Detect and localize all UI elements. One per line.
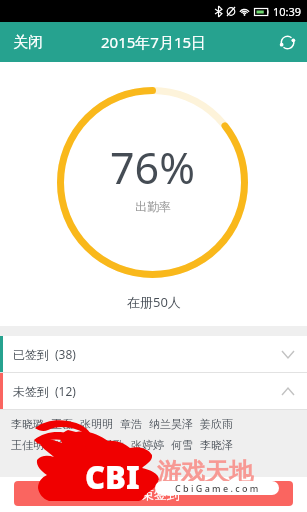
staticText: 张明明 bbox=[80, 417, 113, 431]
staticText: 王佳明 bbox=[11, 438, 44, 452]
button[interactable]: 未签到 bbox=[0, 373, 307, 409]
button[interactable]: 关闭 bbox=[0, 23, 56, 62]
staticText: 未签到 bbox=[13, 384, 49, 399]
staticText: 姜欣雨 bbox=[200, 417, 233, 431]
staticText: 出勤率 bbox=[135, 199, 171, 214]
staticText: 结束签到 bbox=[128, 486, 180, 502]
staticText: C b i G a m e . c o m bbox=[175, 482, 259, 494]
staticText: 李晓泽 bbox=[200, 438, 233, 452]
staticText: 76% bbox=[110, 138, 195, 197]
staticText: 纳兰昊泽 bbox=[149, 417, 193, 431]
staticText: 赵子龙 bbox=[51, 438, 84, 452]
staticText: 已签到 bbox=[13, 347, 49, 362]
staticText: CBI bbox=[85, 456, 140, 498]
staticText: 何雪 bbox=[171, 438, 193, 452]
staticText: 章浩 bbox=[120, 417, 142, 431]
staticText: 张婷婷 bbox=[131, 438, 164, 452]
button[interactable]: 结束签到 bbox=[14, 481, 293, 506]
staticText: 在册50人 bbox=[127, 293, 181, 311]
staticText: 关闭 bbox=[13, 33, 43, 52]
staticText: 2015年7月15日 bbox=[101, 32, 207, 52]
staticText: 笛晨歌 bbox=[91, 438, 124, 452]
staticText: 王磊 bbox=[51, 417, 73, 431]
staticText: 10:39 bbox=[273, 4, 302, 19]
button[interactable]: Refresh bbox=[268, 25, 307, 60]
button[interactable]: 已签到 bbox=[0, 336, 307, 372]
staticText: 李晓璐 bbox=[11, 417, 44, 431]
staticText: (12) bbox=[55, 383, 76, 399]
staticText: (38) bbox=[55, 346, 76, 362]
staticText: 游戏天地 bbox=[157, 457, 253, 487]
